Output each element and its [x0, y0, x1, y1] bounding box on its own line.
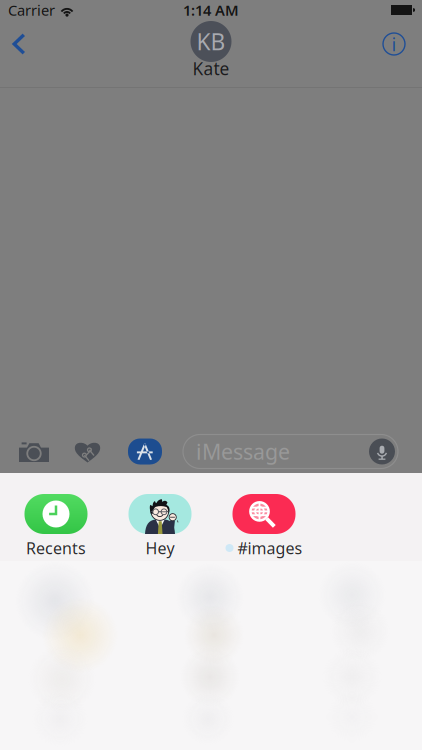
button[interactable]: Details	[382, 22, 422, 66]
button[interactable]: Back	[0, 22, 40, 66]
button[interactable]: Digital Touch	[74, 434, 128, 468]
staticText: 1:14 AM	[183, 0, 239, 20]
staticText: iMessage	[196, 437, 290, 466]
button[interactable]: Camera	[0, 434, 74, 468]
button[interactable]: Hey	[108, 494, 212, 555]
button[interactable]: Recents	[4, 494, 108, 555]
button[interactable]: App Store	[128, 434, 183, 468]
staticText: i	[391, 32, 396, 56]
staticText: Carrier	[8, 0, 55, 20]
staticText: Kate	[192, 57, 229, 80]
staticText: Recents	[26, 537, 86, 559]
button[interactable]: #images	[212, 494, 316, 555]
staticText: KB	[196, 26, 225, 56]
staticText: Hey	[145, 537, 174, 559]
button[interactable]: Dictate	[369, 438, 398, 464]
staticText: #images	[237, 537, 302, 559]
button[interactable]: KB	[190, 21, 231, 86]
